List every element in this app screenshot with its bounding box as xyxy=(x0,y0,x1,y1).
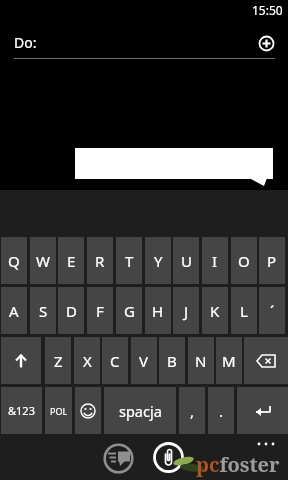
button[interactable] xyxy=(103,443,134,474)
staticText: spacja xyxy=(119,401,162,421)
staticText: I xyxy=(212,251,218,271)
staticText: J xyxy=(184,301,189,321)
staticText: Y xyxy=(154,251,163,271)
button[interactable]: P xyxy=(259,237,285,284)
button[interactable]: O xyxy=(231,237,257,284)
staticText: T xyxy=(125,251,134,271)
button[interactable]: Y xyxy=(145,237,171,284)
button[interactable]: &123 xyxy=(1,387,42,434)
staticText: H xyxy=(152,301,164,321)
button[interactable]: Q xyxy=(1,237,27,284)
button[interactable]: POL xyxy=(45,387,72,434)
button[interactable]: E xyxy=(58,237,84,284)
button[interactable]: G xyxy=(116,287,142,334)
button[interactable]: H xyxy=(145,287,171,334)
button[interactable]: F xyxy=(87,287,113,334)
staticText: M xyxy=(222,351,236,371)
button[interactable]: W xyxy=(30,237,56,284)
button[interactable] xyxy=(75,387,101,434)
staticText: pcfoster xyxy=(196,451,280,478)
button[interactable]: T xyxy=(116,237,142,284)
staticText: F xyxy=(96,301,104,321)
button[interactable]: D xyxy=(58,287,84,334)
staticText: O xyxy=(238,251,250,271)
staticText: , xyxy=(190,401,195,421)
staticText: G xyxy=(124,301,135,321)
button[interactable]: U xyxy=(173,237,199,284)
staticText: K xyxy=(210,301,220,321)
button[interactable] xyxy=(255,32,278,55)
staticText: POL xyxy=(50,405,68,417)
staticText: P xyxy=(267,251,277,271)
button[interactable]: A xyxy=(1,287,27,334)
button[interactable] xyxy=(244,337,288,384)
staticText: &123 xyxy=(8,403,35,418)
staticText: Do: xyxy=(14,33,37,52)
staticText: N xyxy=(195,351,207,371)
button[interactable]: B xyxy=(159,337,185,384)
staticText: E xyxy=(67,251,76,271)
staticText: U xyxy=(181,251,192,271)
staticText: X xyxy=(83,351,92,371)
staticText: B xyxy=(167,351,177,371)
staticText: . xyxy=(219,401,224,421)
button[interactable] xyxy=(1,337,41,384)
button[interactable] xyxy=(237,387,288,434)
button[interactable]: J xyxy=(173,287,199,334)
button[interactable]: V xyxy=(131,337,157,384)
button[interactable]: X xyxy=(74,337,100,384)
staticText: D xyxy=(66,301,77,321)
staticText: Z xyxy=(54,351,63,371)
staticText: W xyxy=(36,251,50,271)
button[interactable]: N xyxy=(188,337,214,384)
button[interactable] xyxy=(153,442,184,473)
staticText: C xyxy=(110,351,120,371)
staticText: ´ xyxy=(270,301,275,321)
button[interactable]: R xyxy=(87,237,113,284)
button[interactable]: S xyxy=(30,287,56,334)
staticText: S xyxy=(39,301,48,321)
button[interactable]: I xyxy=(202,237,228,284)
staticText: 15:50 xyxy=(252,2,283,18)
staticText: A xyxy=(9,301,19,321)
button[interactable]: C xyxy=(102,337,128,384)
staticText: L xyxy=(240,301,248,321)
button[interactable]: spacja xyxy=(104,387,176,434)
staticText: Q xyxy=(8,251,20,271)
staticText: R xyxy=(95,251,105,271)
button[interactable]: . xyxy=(208,387,234,434)
button[interactable]: , xyxy=(179,387,205,434)
button[interactable]: ´ xyxy=(259,287,285,334)
staticText: V xyxy=(139,351,149,371)
button[interactable]: M xyxy=(216,337,242,384)
button[interactable]: Z xyxy=(45,337,71,384)
button[interactable]: K xyxy=(202,287,228,334)
button[interactable]: L xyxy=(231,287,257,334)
